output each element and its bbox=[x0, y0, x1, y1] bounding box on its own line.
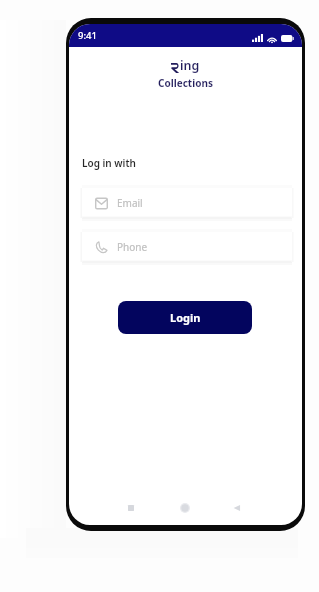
button[interactable]: Phone bbox=[82, 232, 292, 262]
staticText: Collections bbox=[158, 76, 213, 90]
staticText: Login bbox=[170, 310, 201, 325]
button[interactable]: Recents bbox=[123, 500, 139, 516]
button[interactable]: Login bbox=[118, 301, 252, 334]
staticText: Phone bbox=[117, 240, 148, 254]
button[interactable]: Back bbox=[229, 500, 245, 516]
button[interactable]: Home bbox=[177, 500, 193, 516]
staticText: 9:41 bbox=[78, 29, 97, 42]
staticText: ing bbox=[180, 57, 200, 74]
staticText: Log in with bbox=[82, 156, 136, 170]
staticText: Email bbox=[117, 196, 143, 210]
button[interactable]: Email bbox=[82, 188, 292, 218]
